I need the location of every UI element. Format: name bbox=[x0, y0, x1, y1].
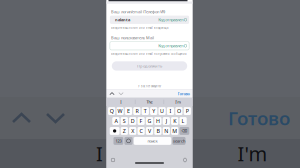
staticText: X bbox=[131, 127, 134, 134]
staticText: J bbox=[166, 117, 167, 125]
button[interactable]: Продолжить bbox=[112, 61, 187, 71]
button[interactable]: Emoji bbox=[108, 155, 117, 164]
button[interactable]: Код отправлен bbox=[158, 16, 189, 24]
staticText: R bbox=[135, 107, 138, 115]
button[interactable]: G bbox=[146, 117, 153, 125]
staticText: S bbox=[123, 117, 126, 125]
staticText: 123 bbox=[115, 138, 121, 143]
button[interactable]: N bbox=[163, 127, 170, 135]
staticText: T bbox=[144, 107, 147, 115]
staticText: I bbox=[169, 107, 171, 115]
button[interactable]: B bbox=[154, 127, 161, 135]
staticText: Код отправлен bbox=[158, 43, 183, 48]
button[interactable]: F bbox=[137, 117, 145, 125]
button[interactable]: Код отправлен bbox=[158, 42, 189, 50]
staticText: I'm bbox=[237, 140, 267, 167]
staticText: I bbox=[96, 140, 103, 167]
button[interactable]: H bbox=[154, 117, 161, 125]
staticText: У вас нет аккаунта? bbox=[138, 84, 161, 88]
staticText: F bbox=[140, 117, 143, 125]
staticText: V bbox=[148, 127, 151, 134]
button[interactable]: L bbox=[179, 117, 187, 125]
button[interactable]: search bbox=[172, 137, 185, 145]
staticText: I'm bbox=[175, 99, 181, 104]
button[interactable]: V bbox=[146, 127, 153, 135]
button[interactable]: Dictation bbox=[180, 155, 189, 164]
staticText: ⌫ bbox=[181, 129, 187, 133]
button[interactable]: J bbox=[163, 117, 170, 125]
staticText: P bbox=[186, 107, 189, 115]
staticText: K bbox=[173, 117, 176, 125]
staticText: M bbox=[172, 127, 177, 134]
button[interactable]: Готово bbox=[177, 89, 192, 98]
button[interactable]: R bbox=[133, 107, 140, 115]
button[interactable]: T bbox=[142, 107, 149, 115]
staticText: Z bbox=[123, 127, 126, 134]
button[interactable]: Next keyboard bbox=[124, 137, 133, 145]
staticText: O bbox=[177, 107, 181, 115]
staticText: Введите ваш логин или email получателя с… bbox=[111, 52, 187, 56]
staticText: A bbox=[114, 117, 117, 125]
staticText: Готово bbox=[228, 106, 290, 130]
button[interactable]: W bbox=[116, 107, 124, 115]
staticText: E bbox=[127, 107, 130, 115]
staticText: поиск bbox=[147, 138, 157, 143]
button[interactable]: Q bbox=[108, 107, 115, 115]
button[interactable]: I'm bbox=[164, 98, 192, 106]
button[interactable]: I bbox=[167, 107, 174, 115]
staticText: Y bbox=[152, 107, 155, 115]
button[interactable]: U bbox=[158, 107, 166, 115]
button[interactable]: S bbox=[121, 117, 128, 125]
button[interactable]: I bbox=[106, 98, 135, 106]
staticText: Ваш логин/email (Телефон VR) bbox=[111, 9, 165, 14]
button[interactable]: K bbox=[171, 117, 178, 125]
button[interactable]: Shift bbox=[110, 127, 119, 135]
button[interactable]: C bbox=[137, 127, 145, 135]
staticText: nalanta bbox=[115, 17, 130, 22]
staticText: G bbox=[147, 117, 151, 125]
staticText: search bbox=[173, 138, 185, 143]
staticText: C bbox=[140, 127, 143, 134]
button[interactable]: A bbox=[112, 117, 119, 125]
staticText: U bbox=[160, 107, 164, 115]
button[interactable]: Next field bbox=[116, 89, 125, 98]
button[interactable]: 123 bbox=[113, 137, 123, 145]
staticText: The bbox=[146, 99, 152, 104]
staticText: D bbox=[131, 117, 135, 125]
staticText: I bbox=[120, 99, 121, 104]
staticText: B bbox=[156, 127, 159, 134]
staticText: Q bbox=[110, 107, 114, 115]
button[interactable]: Previous field bbox=[107, 89, 116, 98]
button[interactable]: X bbox=[129, 127, 136, 135]
button[interactable]: D bbox=[129, 117, 136, 125]
staticText: Продолжить bbox=[137, 63, 162, 69]
staticText: Готово bbox=[177, 91, 189, 96]
button[interactable]: поиск bbox=[134, 137, 171, 145]
button[interactable]: M bbox=[171, 127, 178, 135]
button[interactable]: E bbox=[125, 107, 132, 115]
staticText: W bbox=[118, 107, 123, 115]
staticText: Ваш пользователь Mail bbox=[111, 35, 154, 40]
button[interactable]: Z bbox=[121, 127, 128, 135]
staticText: Код отправлен bbox=[158, 17, 183, 22]
button[interactable]: The bbox=[135, 98, 164, 106]
button[interactable]: P bbox=[184, 107, 191, 115]
staticText: Введите ваш логин или email владельца bbox=[111, 26, 168, 30]
staticText: H bbox=[156, 117, 160, 125]
staticText: L bbox=[182, 117, 185, 125]
button[interactable]: Delete bbox=[179, 127, 189, 135]
button[interactable]: Y bbox=[150, 107, 157, 115]
button[interactable]: O bbox=[175, 107, 182, 115]
staticText: N bbox=[164, 127, 168, 134]
